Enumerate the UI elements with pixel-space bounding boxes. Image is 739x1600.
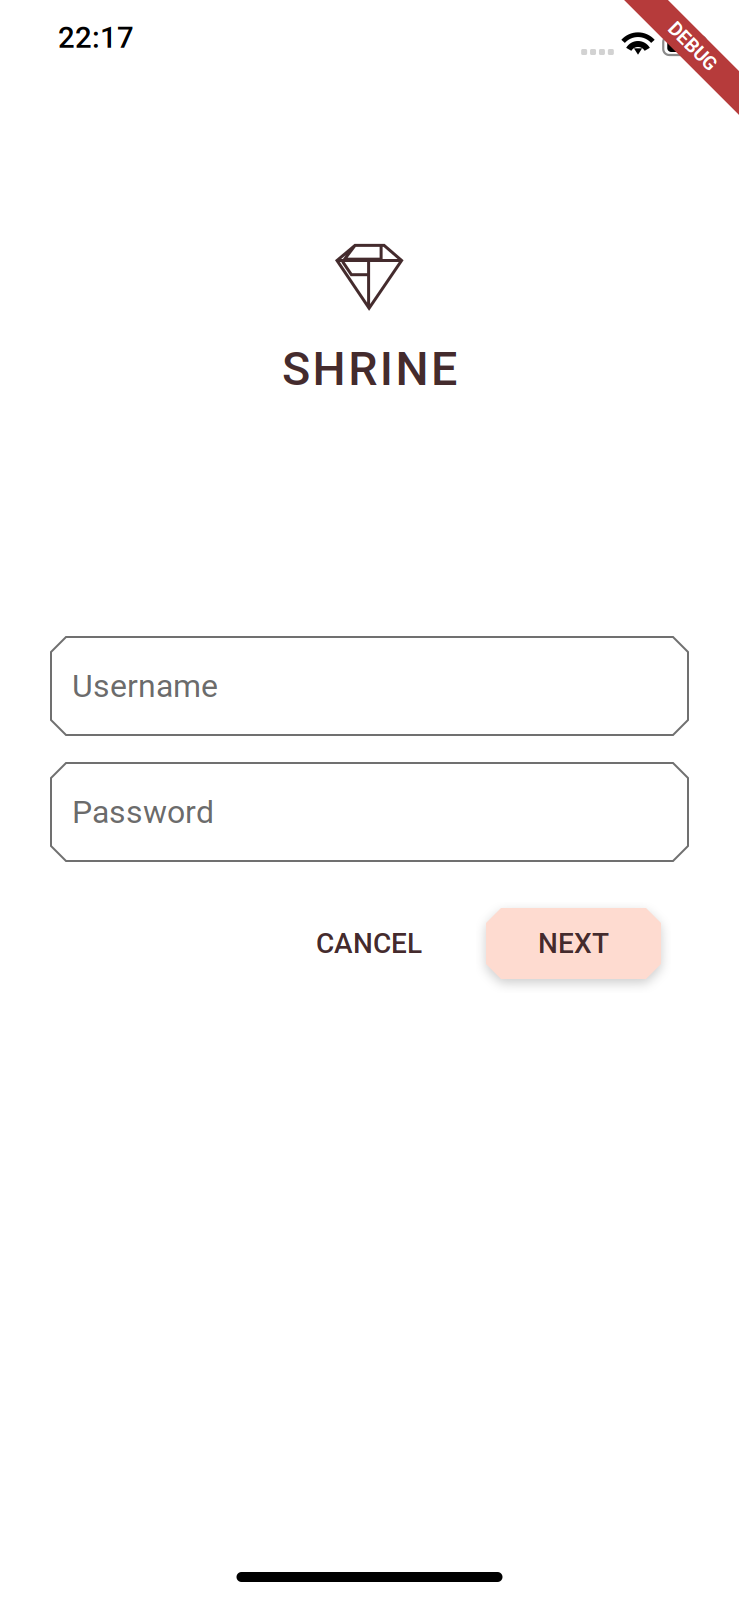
button[interactable]: CANCEL [293,908,445,979]
staticText: DEBUG [662,36,722,57]
staticText: SHRINE [282,342,457,396]
staticText: Username [72,667,218,705]
staticText: NEXT [538,927,609,960]
button[interactable]: Username [51,637,688,735]
staticText: Password [72,793,214,831]
button[interactable]: NEXT [486,908,661,979]
staticText: 22:17 [58,21,134,55]
button[interactable]: Password [51,763,688,861]
staticText: CANCEL [316,927,422,960]
